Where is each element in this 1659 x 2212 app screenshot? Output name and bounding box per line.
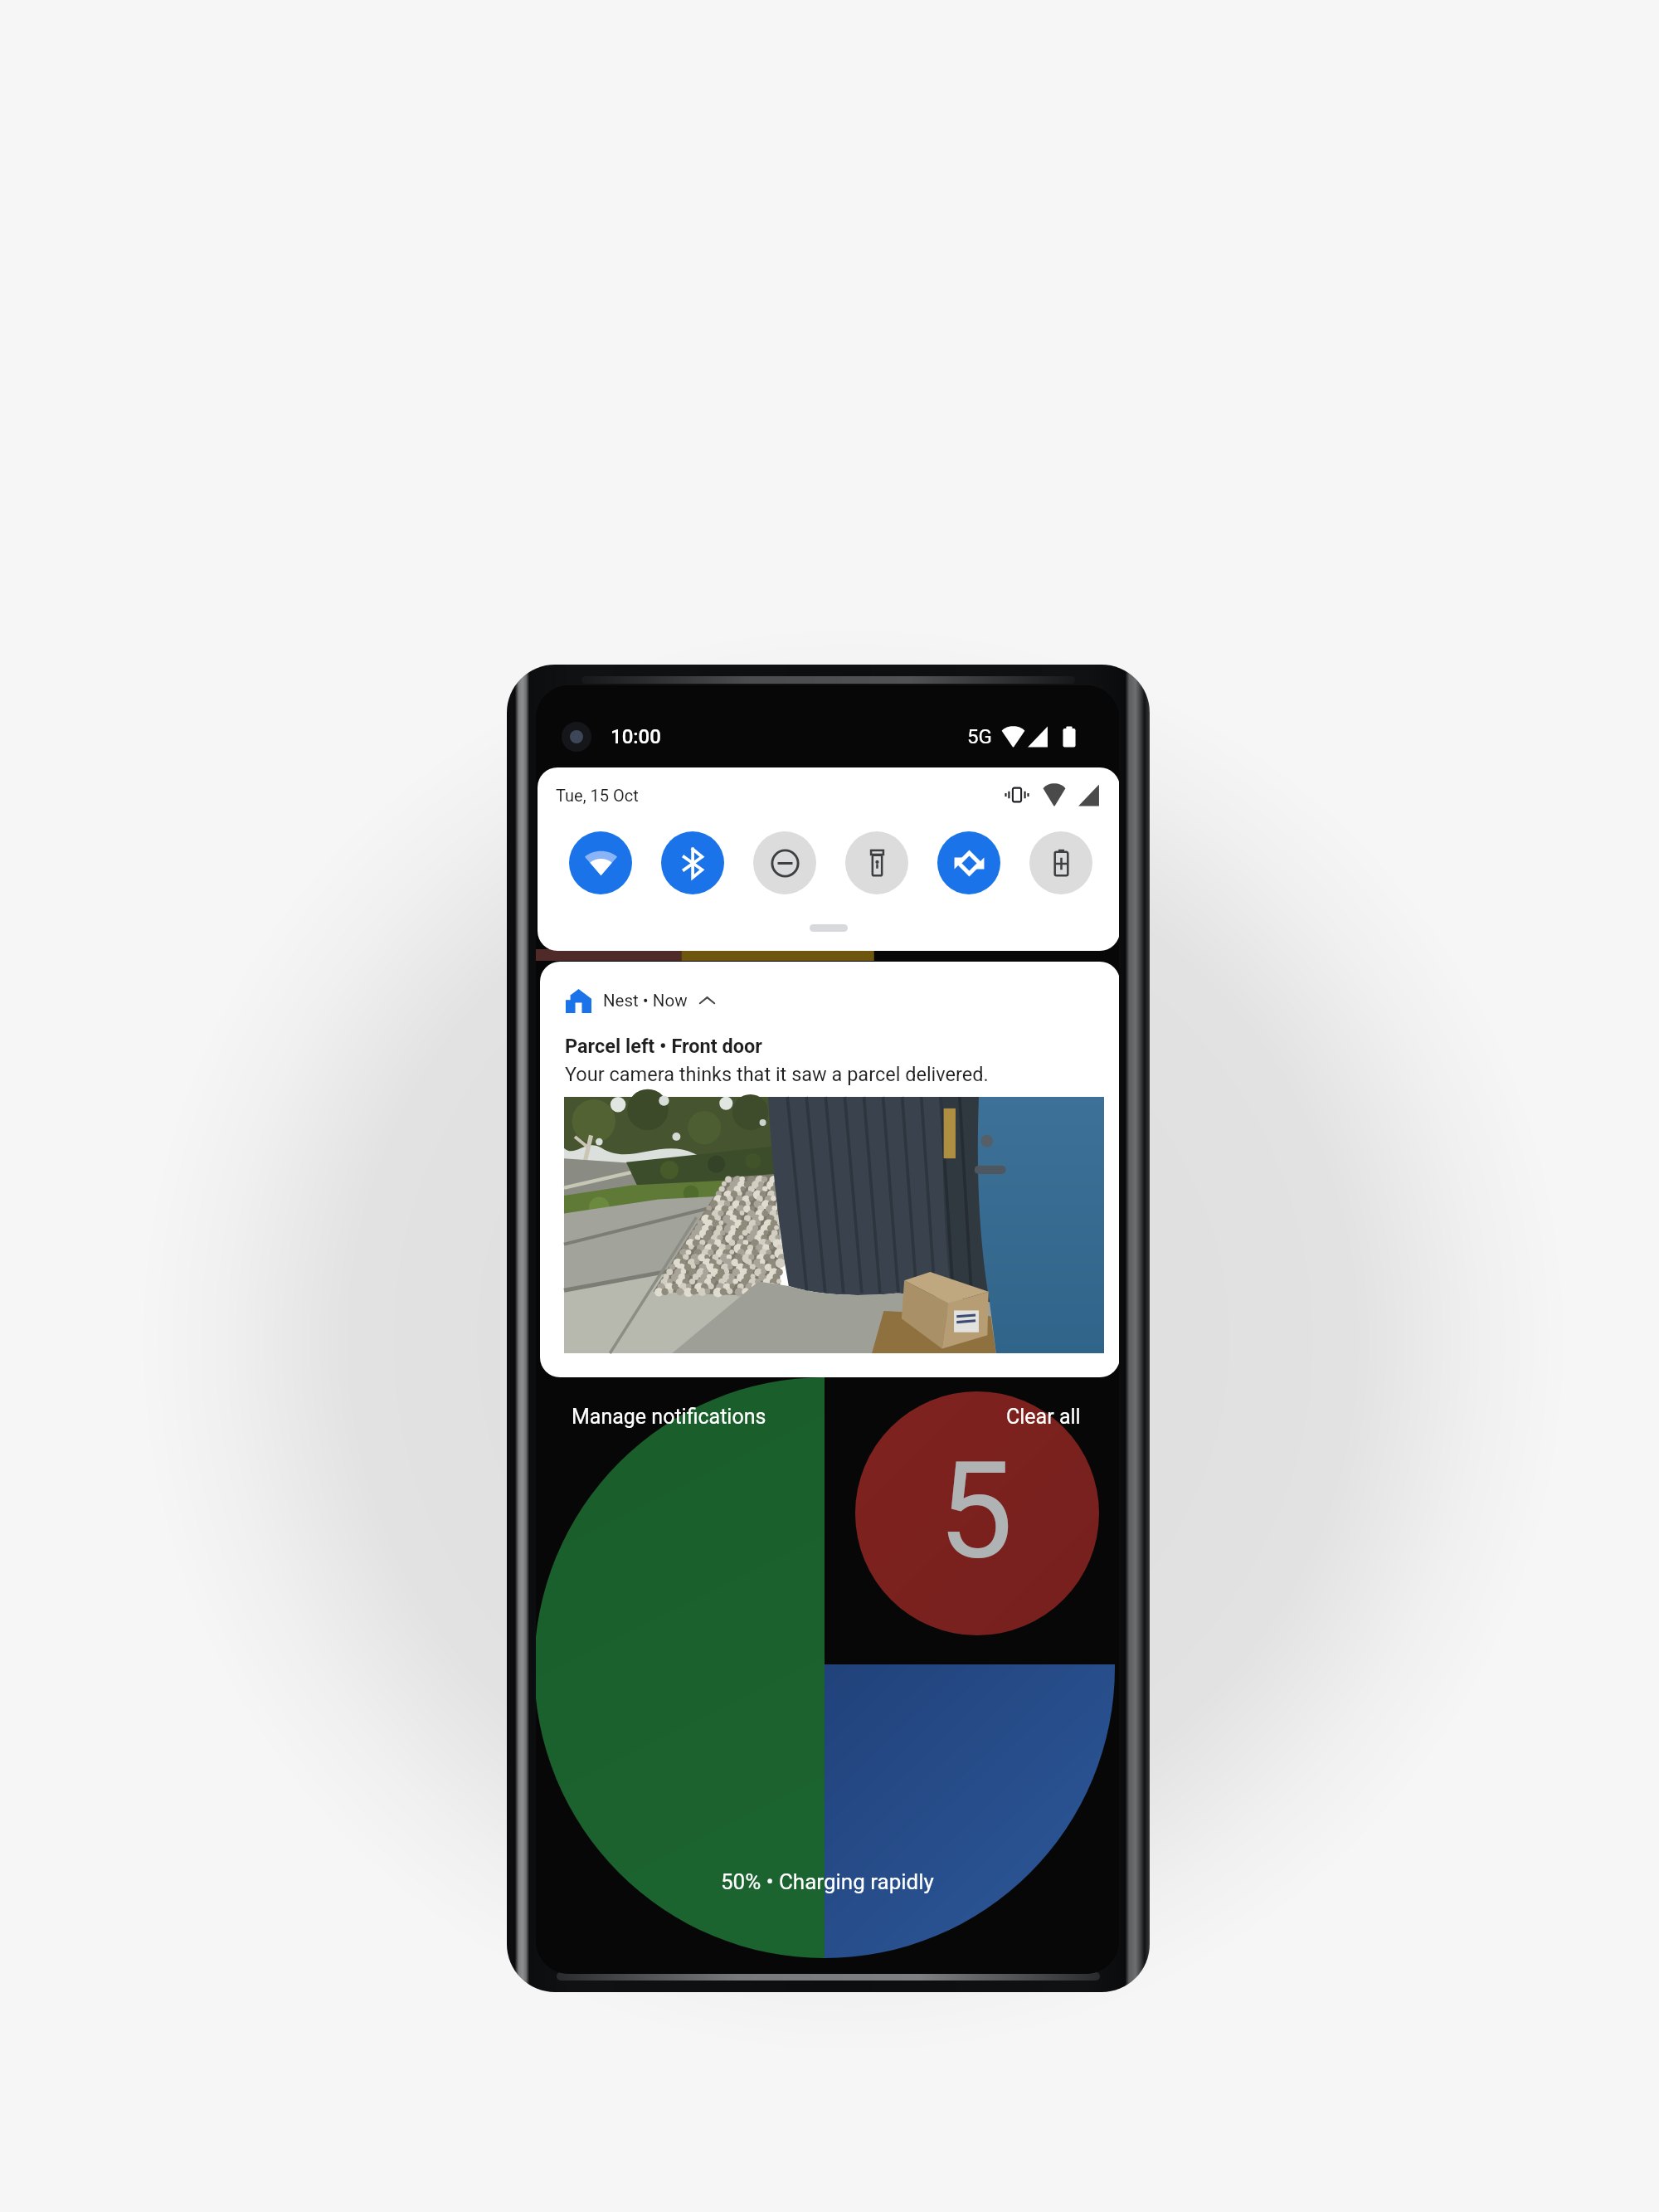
button[interactable]: Collapse notification — [691, 985, 722, 1016]
staticText: 10:00 — [611, 725, 661, 748]
staticText: Parcel left • Front door — [565, 1035, 762, 1058]
staticText: Clear all — [1006, 1405, 1081, 1429]
button[interactable]: Flashlight — [845, 831, 908, 894]
staticText: Manage notifications — [572, 1405, 766, 1429]
button[interactable]: Manage notifications — [572, 1405, 766, 1429]
button[interactable]: Auto rotate — [937, 831, 1000, 894]
button[interactable]: Bluetooth — [661, 831, 724, 894]
staticText: 5G — [967, 725, 992, 748]
button[interactable]: Battery saver — [1029, 831, 1092, 894]
staticText: 50% • Charging rapidly — [721, 1869, 934, 1894]
staticText: Tue, 15 Oct — [556, 786, 639, 805]
button[interactable]: Expand quick settings — [771, 911, 887, 944]
staticText: 5 — [937, 1432, 1014, 1581]
staticText: Your camera thinks that it saw a parcel … — [565, 1063, 989, 1086]
button[interactable]: Clear all — [1006, 1405, 1081, 1429]
button[interactable]: Do not disturb — [753, 831, 816, 894]
button[interactable]: Wi-Fi — [569, 831, 632, 894]
staticText: Nest • Now — [603, 991, 688, 1011]
button[interactable]: Nest • Now — [540, 962, 1119, 1377]
